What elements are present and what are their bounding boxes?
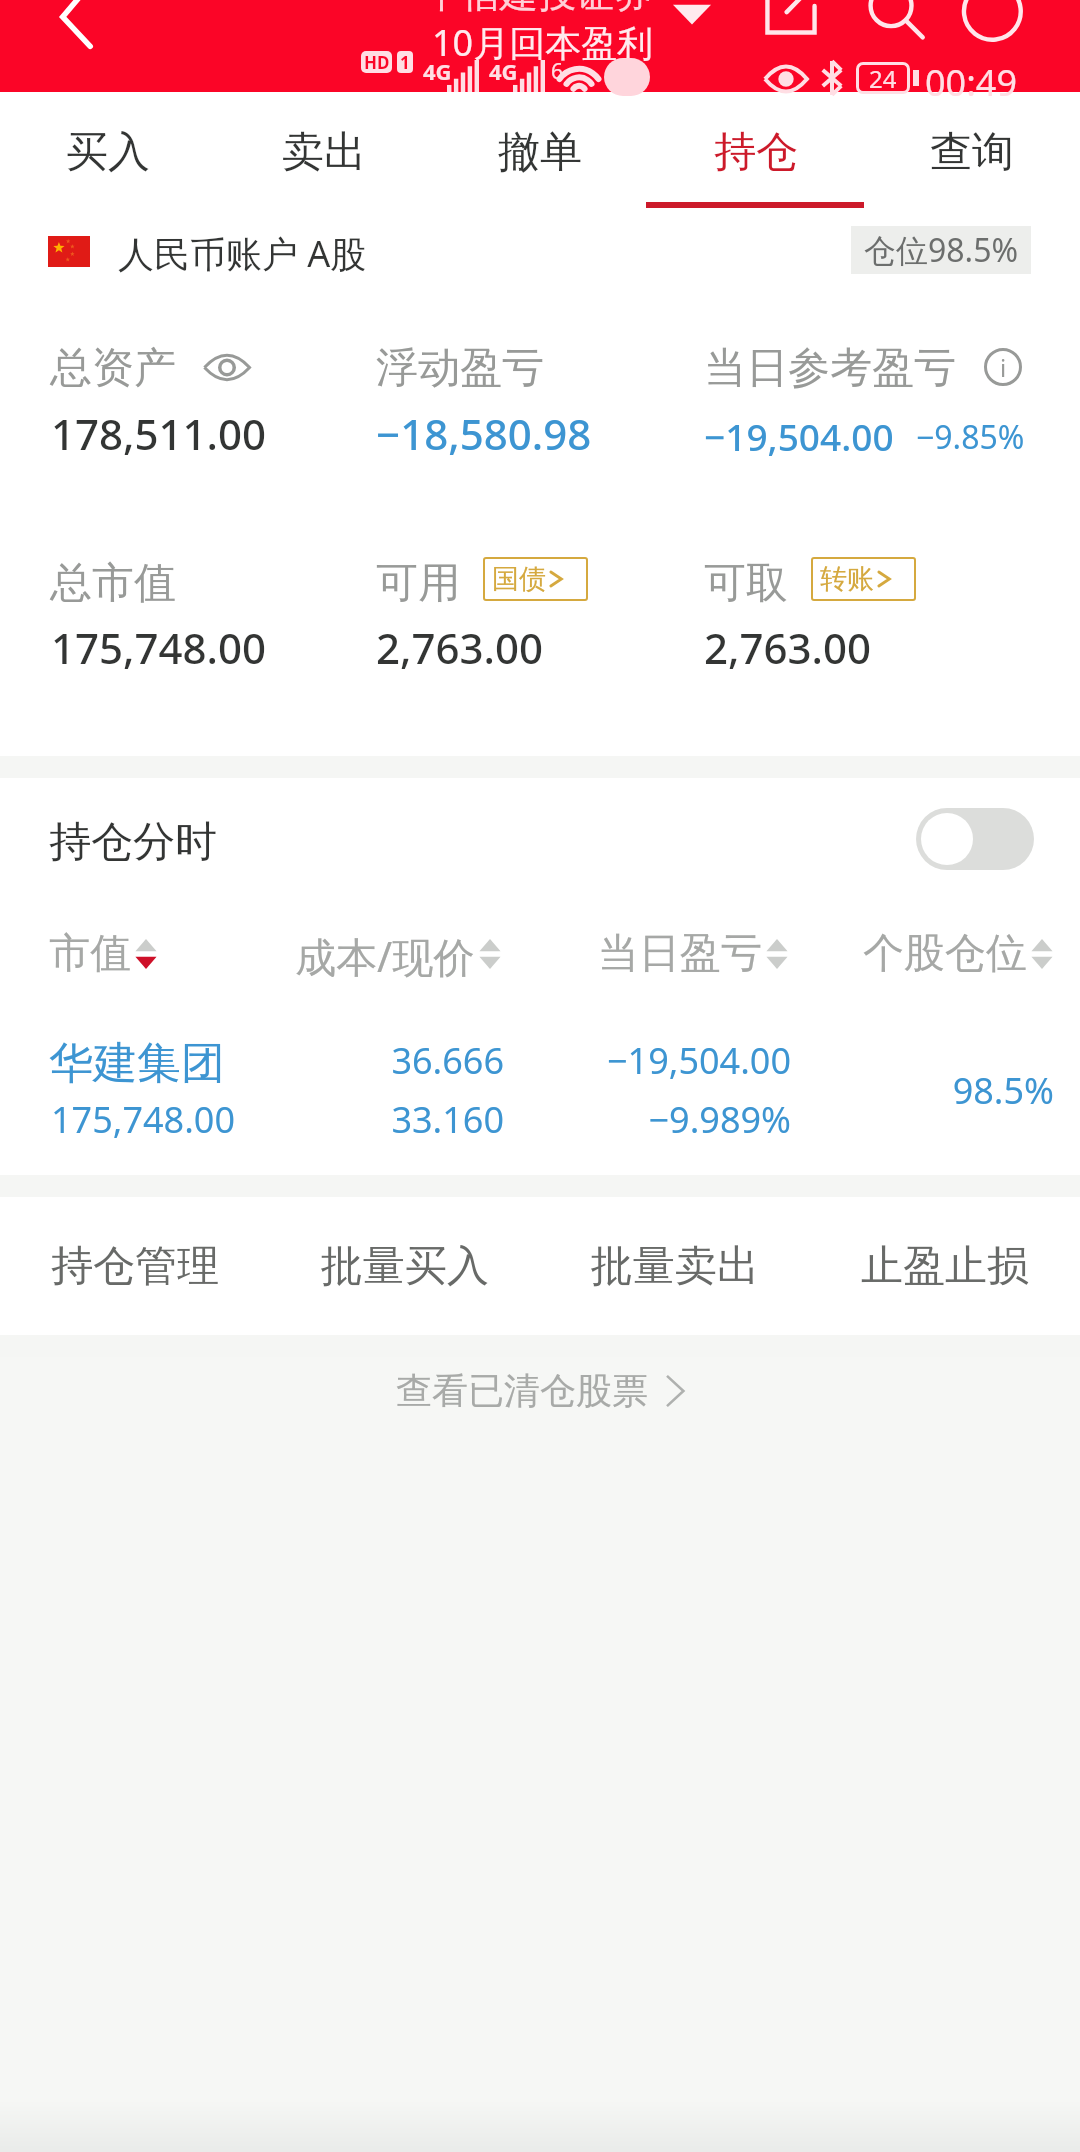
button[interactable]: 华建集团 — [0, 1020, 1080, 1170]
button[interactable]: Refresh — [960, 0, 1026, 45]
staticText: 当日盈亏 — [598, 928, 762, 980]
staticText: 市值 — [49, 928, 131, 980]
button[interactable]: 国债 — [483, 557, 588, 601]
staticText: i — [1000, 351, 1007, 384]
staticText: 撤单 — [498, 126, 582, 179]
staticText: 175,748.00 — [51, 1095, 236, 1144]
button[interactable]: 转账 — [811, 557, 916, 601]
staticText: 批量卖出 — [591, 1240, 759, 1293]
staticText: 2,763.00 — [376, 619, 544, 676]
staticText: 持仓分时 — [49, 816, 217, 869]
staticText: 可用 — [376, 557, 460, 610]
staticText: 24 — [869, 62, 897, 94]
button[interactable]: 人民币账户 A股 — [0, 218, 1080, 292]
staticText: 华建集团 — [49, 1036, 225, 1091]
button[interactable]: 卖出 — [216, 92, 432, 217]
staticText: 1 — [400, 51, 410, 73]
button[interactable]: 成本/现价 — [295, 928, 501, 980]
staticText: 总资产 — [50, 342, 176, 395]
staticText: −9.85% — [916, 415, 1025, 459]
staticText: 成本/现价 — [295, 928, 475, 980]
staticText: 4G — [423, 56, 452, 86]
staticText: 止盈止损 — [861, 1240, 1029, 1293]
staticText: 98.5% — [634, 1066, 1054, 1115]
staticText: 4G — [489, 56, 518, 86]
button[interactable]: 当日盈亏 — [598, 928, 788, 980]
staticText: 中信建投证券 — [424, 0, 652, 18]
button[interactable]: Toggle balance visibility — [203, 351, 251, 384]
button[interactable]: Toggle intraday chart — [916, 808, 1034, 870]
button[interactable]: 个股仓位 — [863, 928, 1053, 980]
staticText: 10月回本盈利 — [432, 18, 654, 67]
staticText: 买入 — [66, 126, 150, 179]
staticText: −19,504.00 — [371, 1036, 791, 1085]
button[interactable]: 批量买入 — [270, 1197, 540, 1335]
staticText: 持仓 — [714, 126, 798, 179]
button[interactable]: 持仓管理 — [0, 1197, 270, 1335]
button[interactable]: 批量卖出 — [540, 1197, 810, 1335]
staticText: −19,504.00 — [704, 411, 894, 461]
staticText: 00:49 — [925, 58, 1018, 107]
staticText: 批量买入 — [321, 1240, 489, 1293]
button[interactable]: 止盈止损 — [810, 1197, 1080, 1335]
staticText: 36.666 — [84, 1036, 504, 1085]
staticText: 175,748.00 — [51, 619, 267, 676]
staticText: 可取 — [704, 557, 788, 610]
button[interactable]: Info — [984, 348, 1022, 386]
button[interactable]: 仓位98.5% — [851, 226, 1031, 274]
staticText: −18,580.98 — [376, 405, 592, 462]
staticText: 卖出 — [282, 126, 366, 179]
button[interactable]: 撤单 — [432, 92, 648, 217]
staticText: 当日参考盈亏 — [704, 342, 956, 395]
staticText: 2,763.00 — [704, 619, 872, 676]
staticText: 33.160 — [84, 1095, 504, 1144]
staticText: 国债 — [492, 562, 546, 596]
staticText: 仓位98.5% — [864, 228, 1019, 272]
button[interactable]: 买入 — [0, 92, 216, 217]
staticText: 个股仓位 — [863, 928, 1027, 980]
staticText: 转账 — [820, 562, 874, 596]
staticText: 浮动盈亏 — [376, 342, 544, 395]
staticText: 总市值 — [50, 557, 176, 610]
button[interactable]: Back — [24, 0, 116, 62]
button[interactable]: 中信建投证券 — [410, 0, 730, 56]
staticText: 查看已清仓股票 — [396, 1368, 648, 1413]
staticText: 人民币账户 A股 — [118, 229, 367, 278]
button[interactable]: 市值 — [49, 928, 157, 980]
button[interactable]: 查询 — [864, 92, 1080, 217]
button[interactable]: Share — [760, 0, 822, 40]
button[interactable]: 查看已清仓股票 — [0, 1347, 1080, 1433]
staticText: −9.989% — [371, 1095, 791, 1144]
staticText: 持仓管理 — [51, 1240, 219, 1293]
staticText: 178,511.00 — [51, 405, 267, 462]
staticText: HD — [364, 51, 390, 73]
button[interactable]: Search — [862, 0, 928, 42]
staticText: 6 — [551, 57, 564, 86]
staticText: 查询 — [930, 126, 1014, 179]
button[interactable]: 持仓 — [648, 92, 864, 217]
